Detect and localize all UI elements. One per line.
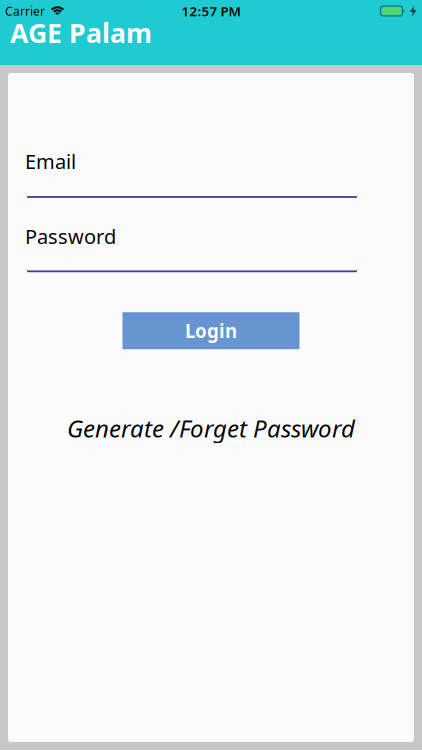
staticText: Generate /Forget Password <box>67 412 355 444</box>
staticText: Carrier <box>5 3 45 19</box>
staticText: AGE Palam <box>10 15 152 50</box>
staticText: Password <box>25 223 116 249</box>
button[interactable]: Generate /Forget Password <box>67 412 355 444</box>
staticText: Email <box>25 148 76 175</box>
button[interactable]: Login <box>122 312 299 349</box>
staticText: 12:57 PM <box>181 2 240 20</box>
staticText: Login <box>185 318 237 343</box>
